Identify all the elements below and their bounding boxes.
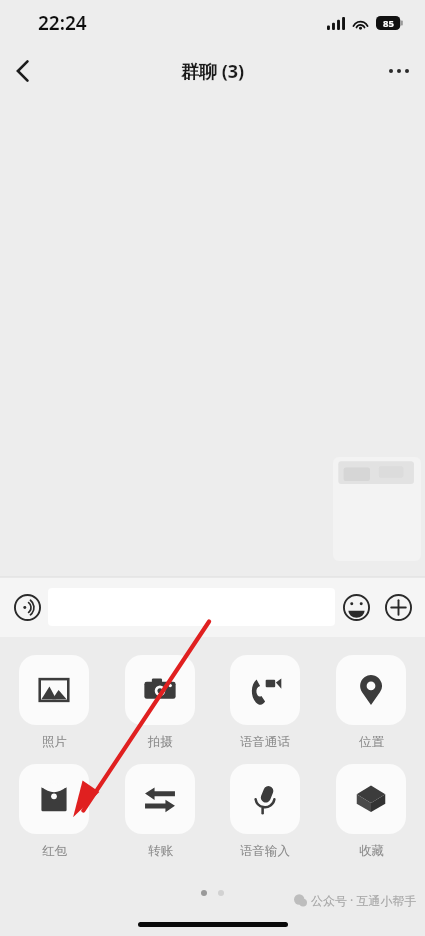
button[interactable]: Location — [331, 655, 411, 750]
other: Voice input — [230, 764, 300, 834]
button[interactable]: Voice call — [225, 655, 305, 750]
other: Transfer — [125, 764, 195, 834]
button[interactable] — [48, 588, 335, 626]
staticText: 群聊 (3) — [181, 59, 245, 84]
button[interactable]: Voice message — [6, 586, 48, 628]
button[interactable]: More functions — [377, 586, 419, 628]
staticText: 语音输入 — [240, 843, 290, 859]
staticText: 位置 — [359, 734, 384, 750]
other: Red packet — [19, 764, 89, 834]
button[interactable]: More options — [373, 46, 425, 96]
staticText: 收藏 — [359, 843, 384, 859]
staticText: 语音通话 — [240, 734, 290, 750]
button[interactable]: Voice input — [225, 764, 305, 859]
staticText: 85 — [383, 17, 394, 30]
button[interactable]: Camera — [120, 655, 200, 750]
button[interactable]: Red packet — [14, 764, 94, 859]
other: Photos — [19, 655, 89, 725]
other: Location — [336, 655, 406, 725]
button[interactable]: Back — [0, 48, 46, 94]
button[interactable]: Emoji — [335, 586, 377, 628]
staticText: 照片 — [42, 734, 67, 750]
other: Favorites — [336, 764, 406, 834]
other: Camera — [125, 655, 195, 725]
staticText: 22:24 — [38, 10, 87, 36]
staticText: 拍摄 — [148, 734, 173, 750]
staticText: 红包 — [42, 843, 67, 859]
button[interactable]: Transfer — [120, 764, 200, 859]
staticText: 公众号 · 互通小帮手 — [311, 892, 417, 908]
staticText: 转账 — [148, 843, 173, 859]
button[interactable]: Favorites — [331, 764, 411, 859]
button[interactable]: Photos — [14, 655, 94, 750]
other: Voice call — [230, 655, 300, 725]
